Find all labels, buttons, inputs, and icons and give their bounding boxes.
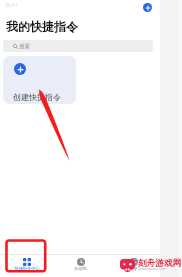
staticText: kezhouyouxi.com <box>138 266 166 271</box>
button[interactable]: 搜索 <box>3 40 153 52</box>
button[interactable]: 共享 <box>107 254 160 277</box>
button[interactable]: 快捷指令中心 <box>0 254 54 277</box>
staticText: 刻舟游戏网 <box>138 258 181 269</box>
staticText: 我的快捷指令 <box>6 19 78 34</box>
button[interactable]: 创建快捷指令 <box>3 56 76 104</box>
button[interactable]: 自动化 <box>54 254 107 277</box>
staticText: 9:41 <box>6 1 18 9</box>
staticText: 搜索 <box>19 43 30 50</box>
staticText: 自动化 <box>74 266 87 271</box>
staticText: 快捷指令中心 <box>14 266 40 271</box>
button[interactable]: Add shortcut <box>143 3 152 12</box>
staticText: 创建快捷指令 <box>13 92 61 102</box>
staticText: 共享 <box>129 266 138 271</box>
